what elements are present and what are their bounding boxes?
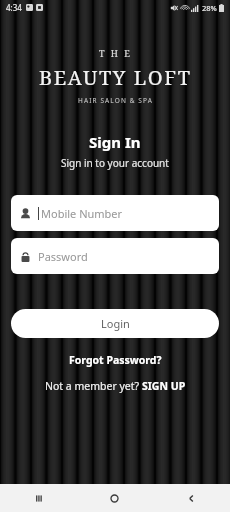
staticText: Sign in to your account [61,156,169,170]
button[interactable]: Back [153,484,230,512]
staticText: BEAUTY LOFT [39,64,192,91]
staticText: Login [101,316,130,331]
staticText: 4:34 [6,2,22,13]
button[interactable]: Not a member yet? [35,376,196,396]
staticText: HAIR SALON & SPA [78,96,153,105]
staticText: Mobile Number [41,206,123,221]
staticText: SIGN UP [142,379,186,393]
staticText: Not a member yet? [45,379,140,393]
button[interactable]: Login [11,309,219,338]
button[interactable]: Recent apps [0,484,76,512]
staticText: Forgot Password? [69,353,162,367]
button[interactable]: Password [11,238,219,274]
staticText: 28% [202,3,217,13]
button[interactable]: Forgot Password? [59,350,172,370]
button[interactable]: Mobile Number [11,195,219,231]
staticText: Sign In [89,132,141,152]
button[interactable]: Home [76,484,153,512]
staticText: T H E [99,47,132,59]
staticText: Password [38,249,88,264]
